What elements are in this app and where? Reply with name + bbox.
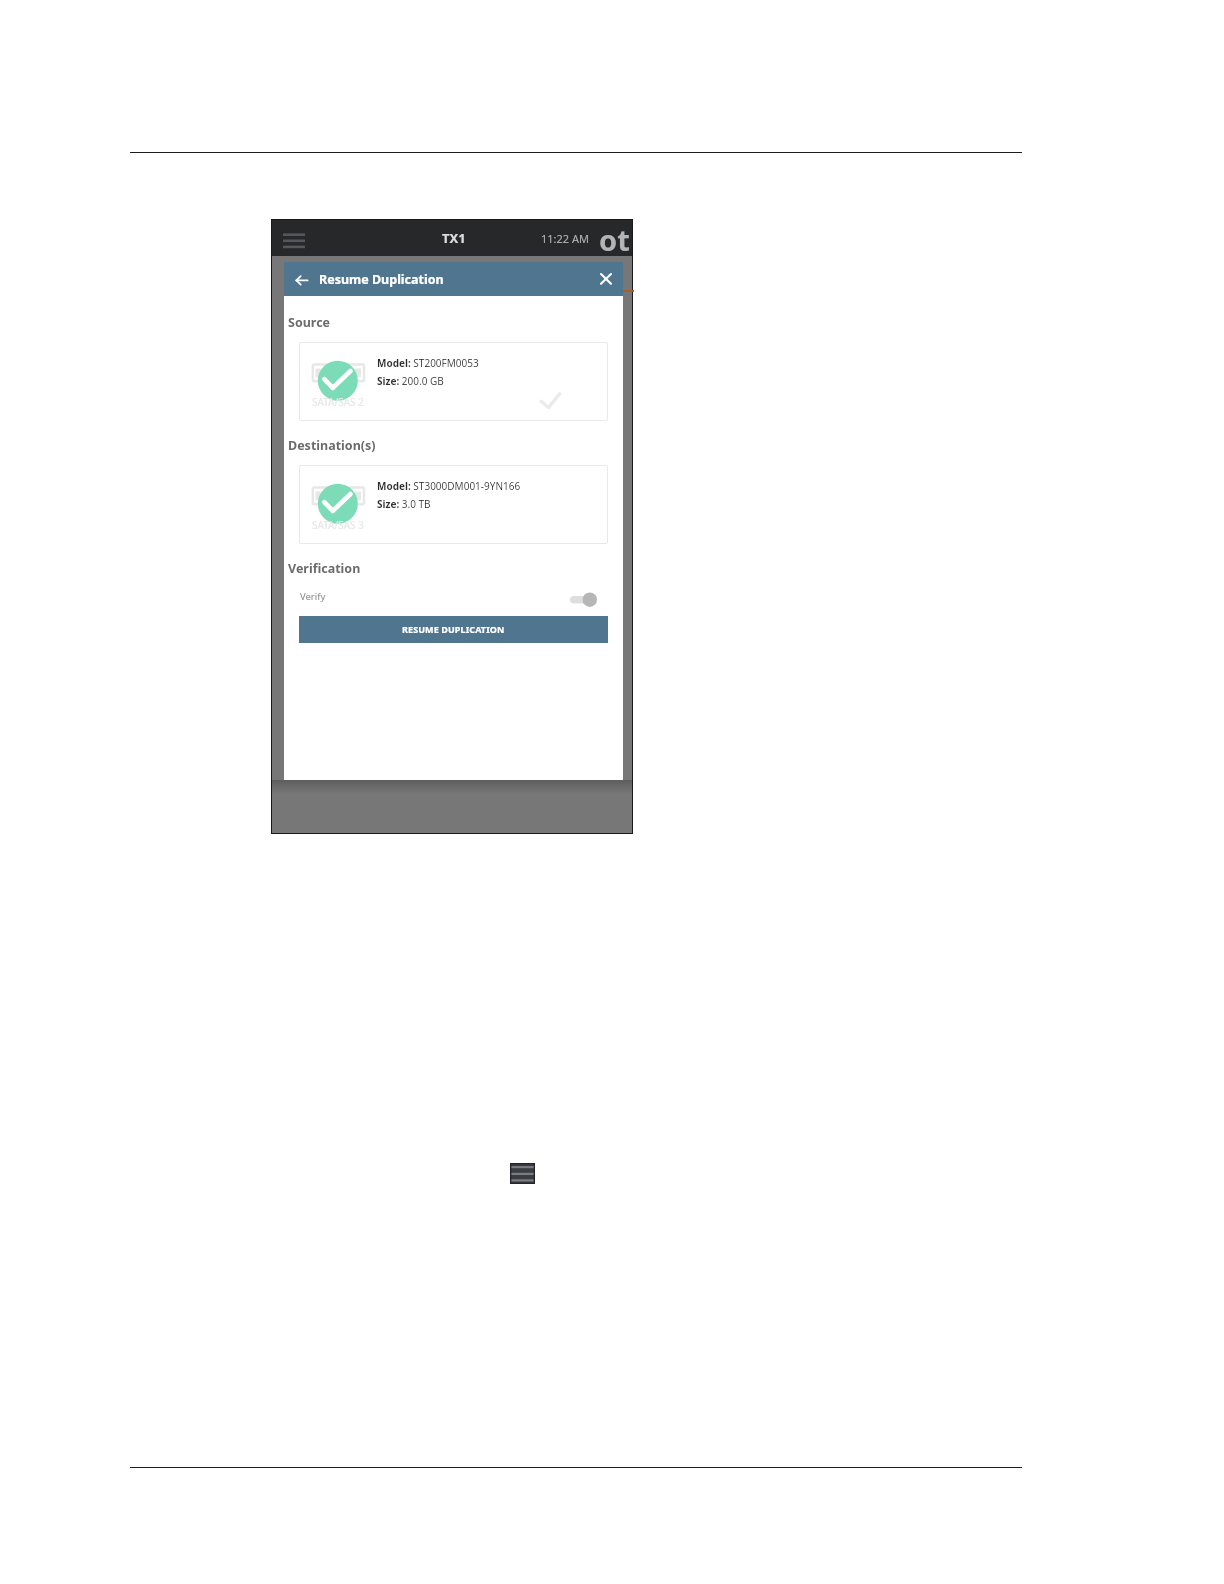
staticText: TX1 [442,229,466,247]
staticText: Model: ST200FM0053 [377,356,479,370]
button[interactable]: Close [596,272,612,288]
button[interactable]: Menu [281,229,307,247]
staticText: ot [599,220,630,256]
staticText: Verify [300,590,326,603]
button[interactable]: RESUME DUPLICATION [299,616,608,643]
button[interactable]: Back [293,271,309,287]
staticText: 11:22 AM [541,231,589,246]
staticText: Verification [288,560,361,577]
button[interactable]: SATA/SAS 2 [299,342,608,421]
staticText: RESUME DUPLICATION [402,623,505,635]
staticText: Resume Duplication [319,271,444,288]
staticText: Size: 3.0 TB [377,497,431,511]
staticText: Destination(s) [288,437,376,454]
button[interactable]: Verify toggle [569,589,601,607]
staticText: Source [288,314,331,331]
staticText: SATA/SAS 2 [312,395,364,409]
staticText: Size: 200.0 GB [377,374,444,388]
staticText: SATA/SAS 3 [312,518,364,532]
button[interactable]: SATA/SAS 3 [299,465,608,544]
staticText: Model: ST3000DM001-9YN166 [377,479,521,493]
